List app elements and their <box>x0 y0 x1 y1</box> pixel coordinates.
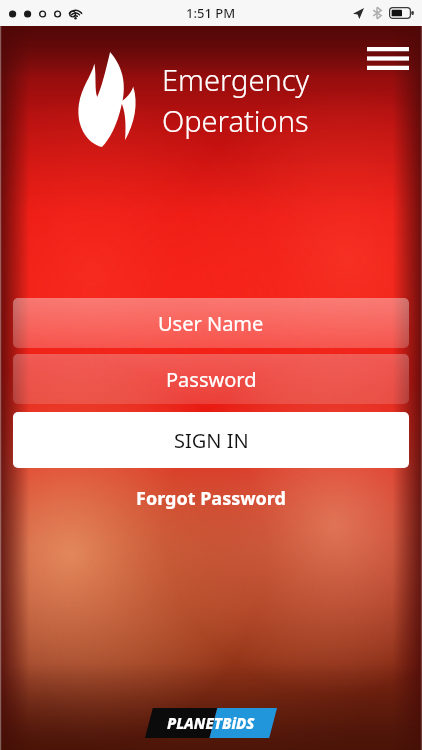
button[interactable]: SIGN IN <box>13 412 409 468</box>
staticText: Password <box>166 366 257 393</box>
staticText: PLANET <box>167 713 222 733</box>
button[interactable]: Password <box>13 354 409 404</box>
staticText: Forgot Password <box>136 486 286 511</box>
button[interactable]: PlanetBids <box>145 708 277 738</box>
button[interactable]: Open menu <box>360 38 416 78</box>
staticText: User Name <box>158 310 264 337</box>
staticText: 1:51 PM <box>186 4 236 22</box>
button[interactable]: User Name <box>13 298 409 348</box>
staticText: Operations <box>162 101 309 140</box>
button[interactable]: Forgot Password <box>13 486 409 511</box>
staticText: SIGN IN <box>174 427 249 454</box>
staticText: BiDS <box>222 713 255 733</box>
staticText: Emergency <box>162 60 310 99</box>
